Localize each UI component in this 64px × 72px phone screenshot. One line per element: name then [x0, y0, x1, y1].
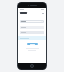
button[interactable]: [20, 31, 44, 34]
button[interactable]: [27, 43, 38, 45]
button[interactable]: [20, 20, 44, 23]
button[interactable]: [18, 36, 46, 40]
button[interactable]: Home: [30, 64, 34, 68]
button[interactable]: [20, 26, 44, 29]
